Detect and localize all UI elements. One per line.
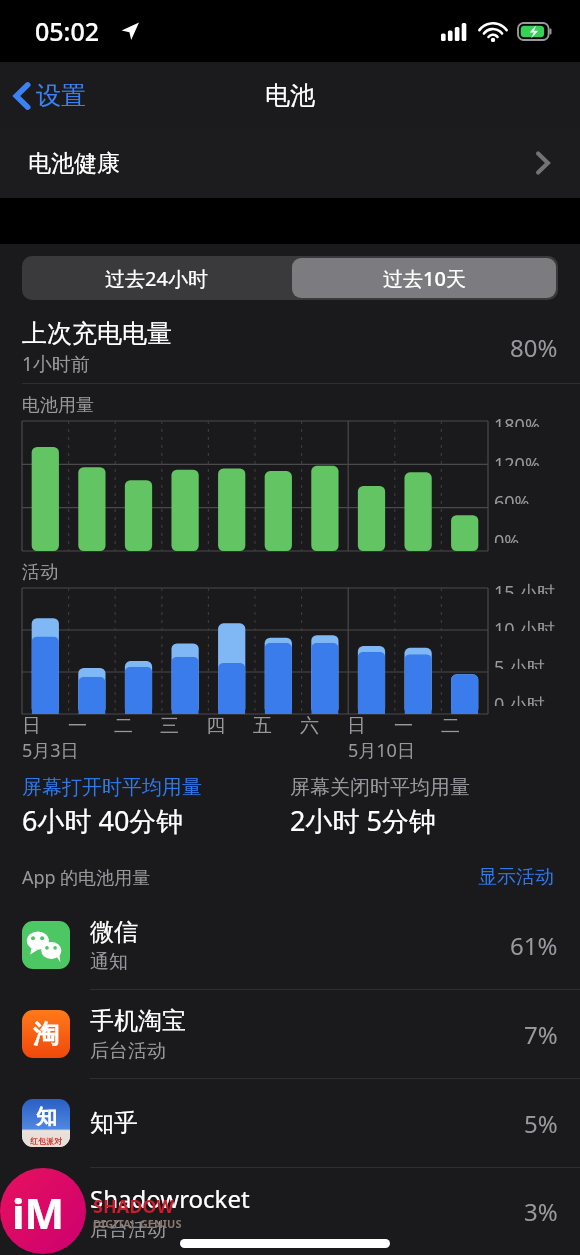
staticText: 二: [441, 714, 460, 738]
staticText: 60%: [494, 490, 530, 504]
staticText: 10 小时: [494, 617, 556, 631]
staticText: 1小时前: [22, 351, 90, 377]
staticText: 知乎: [90, 1108, 138, 1138]
staticText: 屏幕关闭时平均用量: [290, 775, 470, 800]
staticText: 屏幕打开时平均用量: [22, 775, 202, 800]
staticText: 5月3日: [22, 738, 79, 763]
staticText: 0%: [494, 529, 520, 543]
staticText: 5月10日: [348, 738, 415, 763]
staticText: 显示活动: [478, 865, 554, 889]
staticText: 2小时 5分钟: [290, 802, 436, 839]
staticText: 微信: [90, 917, 138, 947]
staticText: 三: [160, 714, 179, 738]
staticText: 3%: [524, 1195, 558, 1228]
staticText: 日: [347, 714, 366, 738]
staticText: 淘: [33, 1018, 59, 1051]
staticText: 知: [36, 1104, 57, 1130]
staticText: 日: [22, 714, 41, 738]
button[interactable]: 淘: [0, 990, 580, 1079]
staticText: 80%: [510, 331, 558, 364]
button[interactable]: 过去10天: [292, 258, 556, 298]
staticText: 四: [206, 714, 225, 738]
staticText: 电池用量: [22, 394, 94, 417]
staticText: 一: [68, 714, 87, 738]
staticText: 通知: [90, 950, 128, 974]
staticText: 120%: [494, 452, 540, 466]
button[interactable]: Shadowrocket: [0, 1168, 580, 1255]
button[interactable]: 微信: [0, 901, 580, 990]
staticText: 05:02: [35, 14, 100, 48]
staticText: 过去24小时: [105, 265, 208, 292]
staticText: 6小时 40分钟: [22, 802, 184, 839]
staticText: 后台活动: [90, 1039, 166, 1063]
staticText: iM: [12, 1184, 65, 1241]
button[interactable]: 知: [0, 1079, 580, 1168]
button[interactable]: 显示活动: [474, 861, 558, 893]
staticText: 过去10天: [383, 265, 466, 292]
staticText: 电池: [265, 80, 315, 111]
staticText: 五: [253, 714, 272, 738]
staticText: 15 小时: [494, 580, 556, 594]
staticText: App 的电池用量: [22, 865, 474, 890]
staticText: 后台活动: [90, 1218, 166, 1242]
staticText: 上次充电电量: [22, 318, 172, 349]
staticText: 电池健康: [28, 149, 120, 178]
staticText: 0 小时: [494, 692, 545, 706]
other: Battery Health: [536, 151, 550, 175]
staticText: 一: [394, 714, 413, 738]
staticText: 手机淘宝: [90, 1006, 186, 1036]
staticText: 六: [300, 714, 319, 738]
button[interactable]: 设置: [0, 74, 96, 117]
staticText: 5%: [524, 1107, 558, 1140]
staticText: 设置: [36, 80, 86, 111]
staticText: 61%: [510, 929, 558, 962]
staticText: 5 小时: [494, 655, 545, 669]
button[interactable]: 电池健康: [0, 128, 580, 198]
button[interactable]: 过去24小时: [22, 256, 290, 300]
staticText: SHADOW: [93, 1194, 174, 1219]
staticText: 活动: [22, 561, 58, 584]
staticText: 二: [114, 714, 133, 738]
staticText: DIGITAL GENIUS: [93, 1216, 182, 1231]
staticText: 7%: [524, 1018, 558, 1051]
staticText: Shadowrocket: [90, 1182, 250, 1215]
staticText: 180%: [494, 413, 540, 427]
staticText: 红包派对: [30, 1136, 62, 1146]
